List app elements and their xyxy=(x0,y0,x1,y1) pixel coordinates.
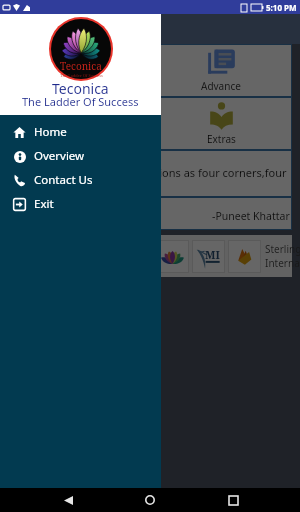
button[interactable]: Contact Us xyxy=(0,168,161,192)
staticText: Teconica xyxy=(52,79,109,98)
button[interactable]: Overview xyxy=(0,144,161,168)
button[interactable]: Basic xyxy=(8,97,150,150)
staticText: Devotion is divided into sections as fou… xyxy=(14,165,287,180)
button[interactable]: Home xyxy=(135,488,165,512)
staticText: The Ladder Of Success xyxy=(22,94,139,109)
button[interactable] xyxy=(228,240,261,273)
staticText: The Ladder Of Success xyxy=(60,73,103,78)
staticText: Overview xyxy=(34,148,85,164)
button[interactable]: Home xyxy=(8,44,150,97)
staticText: Home xyxy=(65,78,94,92)
button[interactable]: Advance xyxy=(150,44,292,97)
button[interactable]: Recent apps xyxy=(218,488,248,512)
button[interactable]: Extras xyxy=(150,97,292,150)
staticText: 5:10 PM xyxy=(266,2,297,13)
staticText: Extras xyxy=(207,132,236,146)
button[interactable]: Back xyxy=(53,488,83,512)
button[interactable]: MI xyxy=(192,240,225,273)
staticText: Home xyxy=(34,124,67,140)
staticText: -Puneet Khattar xyxy=(212,209,290,223)
button[interactable]: Exit xyxy=(0,192,161,216)
staticText: Exit xyxy=(34,196,54,212)
staticText: MI xyxy=(205,247,220,262)
staticText: Teconica xyxy=(60,59,102,73)
staticText: Advance xyxy=(201,79,241,93)
button[interactable] xyxy=(156,240,189,273)
staticText: Sterling xyxy=(265,242,300,256)
staticText: International xyxy=(265,256,300,270)
button[interactable]: Home xyxy=(0,120,161,144)
staticText: Contact Us xyxy=(34,172,93,188)
